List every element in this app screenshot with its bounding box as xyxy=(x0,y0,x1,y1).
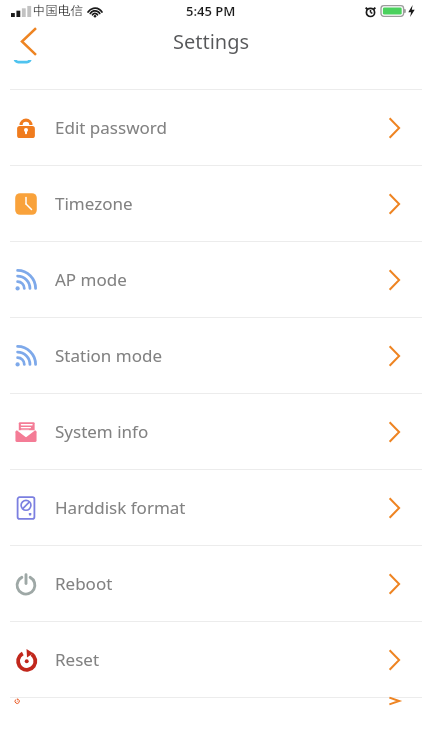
staticText: Settings xyxy=(173,28,250,55)
button[interactable]: Name xyxy=(0,60,422,89)
button[interactable]: Harddisk format xyxy=(0,470,422,545)
button[interactable]: Back xyxy=(0,22,58,60)
staticText: Harddisk format xyxy=(55,496,186,519)
button[interactable]: Edit password xyxy=(0,90,422,165)
staticText: AP mode xyxy=(55,268,127,291)
button[interactable]: Reset xyxy=(0,622,422,697)
button[interactable]: Timezone xyxy=(0,166,422,241)
staticText: System info xyxy=(55,420,149,443)
staticText: 5:45 PM xyxy=(186,2,236,20)
staticText: Reset xyxy=(55,648,100,671)
button[interactable]: Reboot xyxy=(0,546,422,621)
staticText: Timezone xyxy=(55,192,133,215)
button[interactable]: Station mode xyxy=(0,318,422,393)
button[interactable]: Shotdown delay xyxy=(0,698,422,704)
button[interactable]: System info xyxy=(0,394,422,469)
staticText: Station mode xyxy=(55,344,162,367)
button[interactable]: AP mode xyxy=(0,242,422,317)
staticText: Edit password xyxy=(55,116,167,139)
staticText: Reboot xyxy=(55,572,113,595)
staticText: 中国电信 xyxy=(33,3,83,19)
